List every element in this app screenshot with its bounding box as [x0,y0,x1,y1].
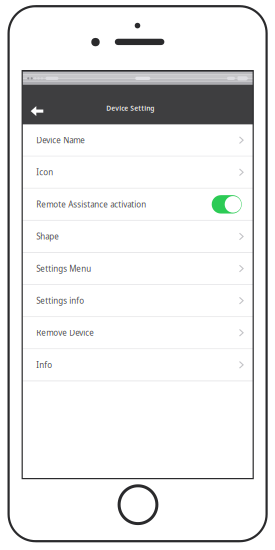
button[interactable]: Remote Assistance activation [22,189,253,221]
button[interactable]: Back [26,100,48,122]
button[interactable]: Settings Menu [22,253,253,285]
button[interactable]: Info [22,349,253,381]
staticText: Info [36,359,52,370]
staticText: Settings Menu [36,263,91,274]
staticText: Remove Device [36,327,94,338]
staticText: Settings info [36,295,84,306]
staticText: Icon [36,167,53,177]
staticText: Shape [36,231,59,242]
button[interactable]: Shape [22,221,253,253]
staticText: Device Setting [106,104,154,113]
button[interactable]: Settings info [22,285,253,317]
button[interactable]: Icon [22,157,253,189]
button[interactable]: Device Name [22,125,253,157]
staticText: Device Name [36,135,85,145]
button[interactable]: Remove Device [22,317,253,349]
staticText: Remote Assistance activation [36,199,146,210]
